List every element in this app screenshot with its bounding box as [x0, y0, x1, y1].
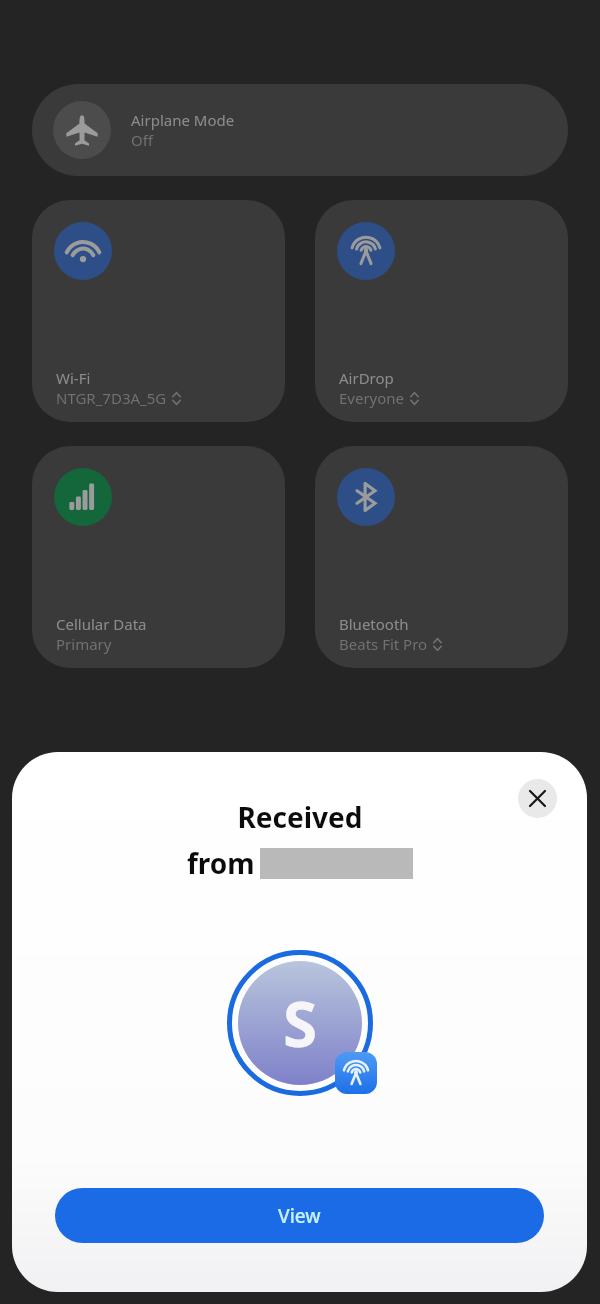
button[interactable]: Cellular Data — [32, 446, 285, 668]
button[interactable]: View — [55, 1188, 544, 1243]
staticText: from — [187, 844, 255, 882]
staticText: Beats Fit Pro — [339, 634, 428, 654]
button[interactable]: Airplane Mode — [32, 84, 568, 176]
staticText: Received — [237, 798, 363, 836]
staticText: S — [283, 981, 318, 1065]
staticText: Bluetooth — [339, 614, 409, 634]
staticText: View — [278, 1203, 321, 1229]
staticText: AirDrop — [339, 368, 394, 388]
staticText: Primary — [56, 634, 112, 654]
staticText: Off — [131, 130, 154, 150]
staticText: Everyone — [339, 388, 405, 408]
button[interactable]: Bluetooth — [315, 446, 568, 668]
staticText: Cellular Data — [56, 614, 147, 634]
staticText: NTGR_7D3A_5G — [56, 388, 167, 408]
staticText: Airplane Mode — [131, 110, 235, 130]
button[interactable]: AirDrop — [315, 200, 568, 422]
button[interactable]: Close — [518, 779, 557, 818]
button[interactable]: Wi-Fi — [32, 200, 285, 422]
staticText: Wi-Fi — [56, 368, 91, 388]
